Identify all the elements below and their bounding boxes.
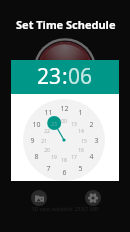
staticText: SD card available: 25301 MB [0,206,130,213]
button[interactable]: 21 [41,138,47,145]
button[interactable]: 12 [60,104,69,114]
button[interactable]: 3 [94,136,99,146]
button[interactable]: 22 [44,128,50,135]
button[interactable]: 6 [62,168,67,178]
button[interactable]: 20 [44,147,50,154]
button[interactable]: 18 [61,157,67,164]
button[interactable]: 00 [61,118,67,125]
button[interactable]: 15 [81,138,87,145]
button[interactable]: 5 [78,164,83,174]
button[interactable]: 8 [34,152,39,162]
button[interactable]: Gallery [31,190,47,206]
staticText: Set Time Schedule [16,17,116,32]
button[interactable]: 2 [89,120,94,130]
staticText: : [62,62,68,91]
button[interactable]: 19 [51,154,57,161]
button[interactable]: 23 [37,62,62,91]
button[interactable]: Settings [85,190,101,206]
button[interactable]: 4 [89,152,94,162]
button[interactable]: 10 [32,120,41,130]
button[interactable]: 06 [68,62,93,91]
button[interactable]: 1 [78,108,83,118]
button[interactable]: 17 [71,154,77,161]
button[interactable]: 7 [46,164,51,174]
button[interactable]: 11 [44,108,53,118]
button[interactable]: 16 [78,147,84,154]
button[interactable]: 13 [71,121,77,128]
button[interactable]: 23 [51,121,57,128]
button[interactable]: 14 [78,128,84,135]
button[interactable]: 9 [30,136,35,146]
